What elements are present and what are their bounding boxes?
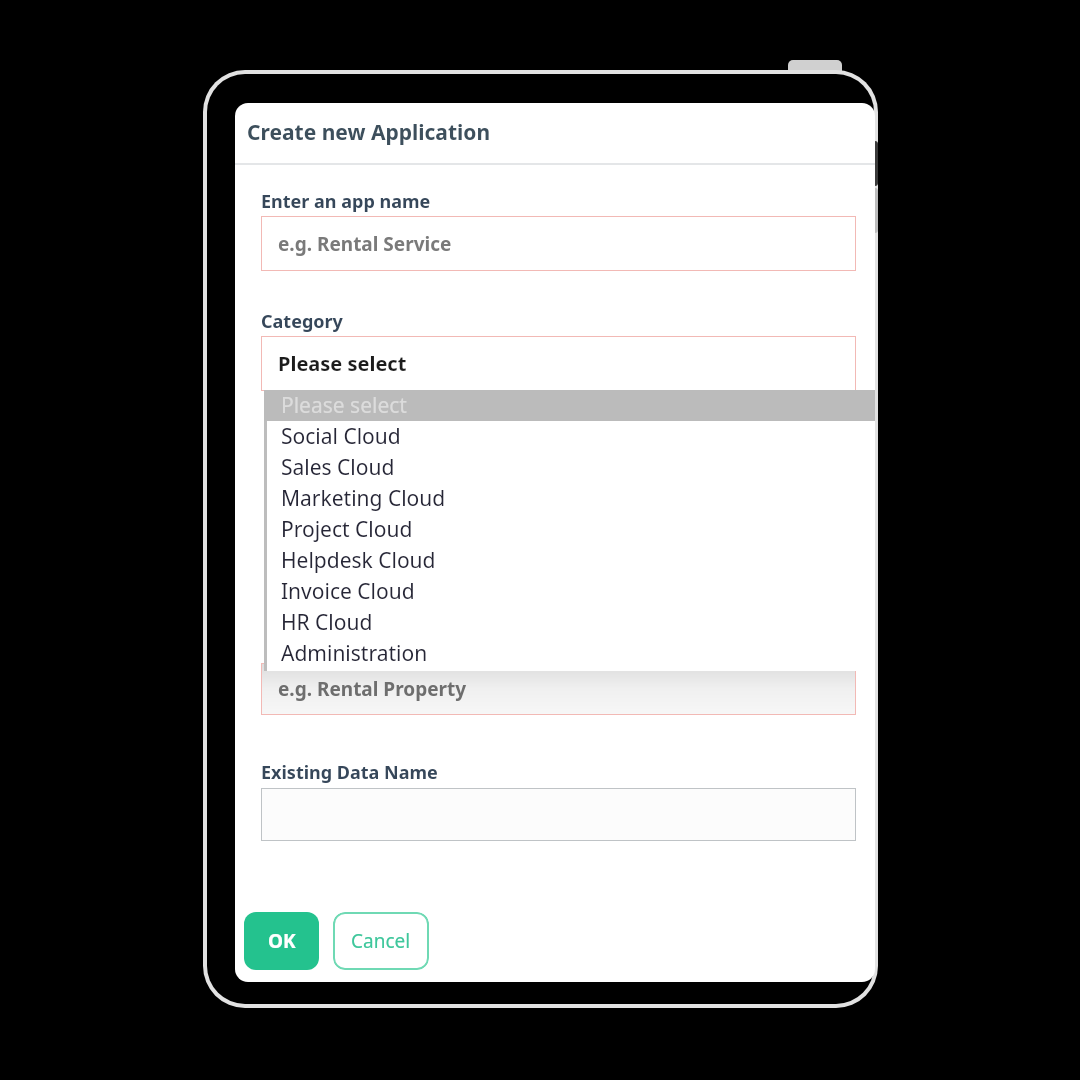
button[interactable]: Social Cloud xyxy=(264,421,875,452)
staticText: e.g. Rental Property xyxy=(278,676,467,702)
button[interactable]: Marketing Cloud xyxy=(264,483,875,514)
staticText: Invoice Cloud xyxy=(281,577,415,606)
button[interactable]: Please select xyxy=(264,390,875,421)
button[interactable]: Sales Cloud xyxy=(264,452,875,483)
staticText: Cancel xyxy=(351,928,411,954)
button[interactable]: e.g. Rental Property xyxy=(261,663,856,715)
staticText: Please select xyxy=(281,391,407,420)
staticText: HR Cloud xyxy=(281,608,373,637)
staticText: Sales Cloud xyxy=(281,453,395,482)
button[interactable]: Cancel xyxy=(333,912,429,970)
staticText: e.g. Rental Service xyxy=(278,231,452,257)
button[interactable]: Invoice Cloud xyxy=(264,576,875,607)
button[interactable]: Helpdesk Cloud xyxy=(264,545,875,576)
staticText: Marketing Cloud xyxy=(281,484,446,513)
staticText: Category xyxy=(261,309,343,334)
staticText: Project Cloud xyxy=(281,515,413,544)
button[interactable]: App name input xyxy=(261,216,856,271)
staticText: Existing Data Name xyxy=(261,760,438,785)
button[interactable]: OK xyxy=(244,912,319,970)
staticText: Please select xyxy=(278,350,407,377)
staticText: Social Cloud xyxy=(281,422,401,451)
staticText: Administration xyxy=(281,639,428,668)
staticText: Create new Application xyxy=(247,118,491,147)
staticText: Helpdesk Cloud xyxy=(281,546,436,575)
button[interactable]: HR Cloud xyxy=(264,607,875,638)
staticText: Enter an app name xyxy=(261,189,431,214)
button[interactable] xyxy=(261,788,856,841)
button[interactable]: Project Cloud xyxy=(264,514,875,545)
staticText: OK xyxy=(268,928,296,954)
button[interactable]: Please select xyxy=(261,336,856,391)
button[interactable]: Administration xyxy=(264,638,875,669)
